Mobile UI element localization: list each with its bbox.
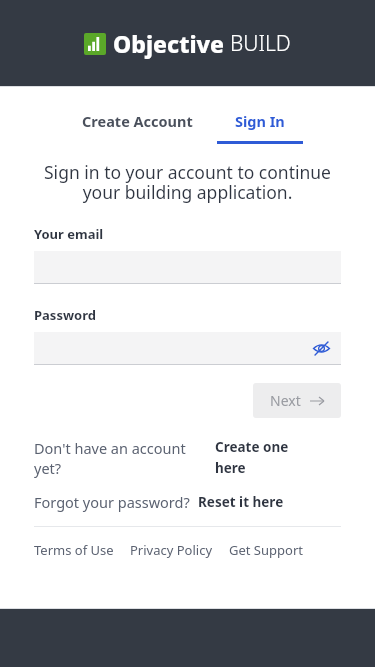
button[interactable]: Terms of Use — [34, 541, 114, 559]
button[interactable]: Get Support — [229, 541, 303, 559]
staticText: Password — [34, 306, 96, 324]
button[interactable]: Show password — [309, 336, 333, 360]
staticText: Forgot your password? — [34, 492, 190, 512]
staticText: Reset it here — [198, 493, 284, 511]
staticText: Sign in to your account to continue your… — [34, 160, 341, 205]
staticText: Terms of Use — [34, 541, 114, 559]
staticText: Sign In — [235, 111, 285, 131]
button[interactable]: Show password — [34, 332, 341, 364]
staticText: Your email — [34, 225, 104, 243]
staticText: Don't have an account yet? — [34, 438, 209, 478]
staticText: Get Support — [229, 541, 303, 559]
button[interactable]: Next — [253, 383, 341, 418]
button[interactable]: Create Account — [72, 107, 203, 135]
button[interactable]: Privacy Policy — [130, 541, 213, 559]
button[interactable]: Create one here — [215, 438, 291, 477]
staticText: Create one here — [215, 438, 291, 477]
button[interactable]: Sign In — [217, 107, 303, 144]
staticText: Objective — [113, 28, 225, 59]
staticText: Create Account — [82, 111, 193, 131]
staticText: Privacy Policy — [130, 541, 213, 559]
button[interactable]: Reset it here — [198, 493, 284, 511]
staticText: Next — [270, 391, 301, 410]
staticText: BUILD — [230, 29, 291, 58]
